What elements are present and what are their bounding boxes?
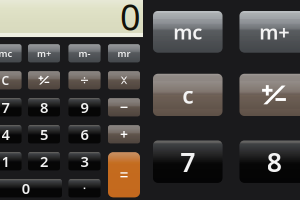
staticText: m- <box>78 47 90 59</box>
button[interactable]: Memory clear <box>153 11 222 52</box>
button[interactable]: Memory add <box>239 11 300 52</box>
staticText: 6 <box>80 125 88 144</box>
staticText: 4 <box>1 125 9 144</box>
button[interactable]: Two <box>28 152 60 170</box>
button[interactable]: Add <box>108 125 140 143</box>
button[interactable]: Three <box>68 152 100 170</box>
staticText: mr <box>117 47 130 59</box>
button[interactable]: Zero <box>0 179 62 197</box>
staticText: 1 <box>1 152 9 171</box>
button[interactable]: Seven <box>0 98 21 116</box>
button[interactable]: Four <box>0 125 21 143</box>
button[interactable]: One <box>0 152 21 170</box>
button[interactable]: Subtract <box>108 98 140 116</box>
staticText: mc <box>0 47 12 59</box>
button[interactable]: Equals <box>108 152 140 197</box>
staticText: 8 <box>40 98 48 117</box>
button[interactable]: Plus minus <box>239 74 300 116</box>
staticText: 3 <box>80 152 88 171</box>
button[interactable]: Multiply <box>108 71 140 89</box>
staticText: m+ <box>259 18 289 45</box>
button[interactable]: Memory clear <box>0 44 21 62</box>
staticText: 7 <box>1 98 9 117</box>
staticText: 9 <box>80 98 88 117</box>
button[interactable]: Clear <box>0 71 21 89</box>
button[interactable]: Memory add <box>28 44 60 62</box>
button[interactable]: Clear <box>153 74 222 116</box>
button[interactable]: Five <box>28 125 60 143</box>
button[interactable]: Divide <box>68 71 100 89</box>
button[interactable]: Decimal point <box>68 179 100 197</box>
staticText: 0 <box>120 0 141 40</box>
button[interactable]: Six <box>68 125 100 143</box>
staticText: m+ <box>37 47 51 59</box>
staticText: mc <box>173 18 202 45</box>
button[interactable]: Plus minus <box>28 71 60 89</box>
button[interactable]: Memory subtract <box>68 44 100 62</box>
staticText: 7 <box>180 144 195 179</box>
button[interactable]: Eight <box>28 98 60 116</box>
staticText: 5 <box>40 125 48 144</box>
staticText: C <box>1 72 9 88</box>
button[interactable]: Memory recall <box>108 44 140 62</box>
staticText: c <box>182 80 193 110</box>
staticText: 8 <box>267 144 282 179</box>
staticText: 2 <box>40 152 48 171</box>
staticText: 0 <box>22 179 30 198</box>
button[interactable]: Nine <box>68 98 100 116</box>
button[interactable]: Eight <box>239 140 300 183</box>
button[interactable]: Seven <box>153 140 222 183</box>
